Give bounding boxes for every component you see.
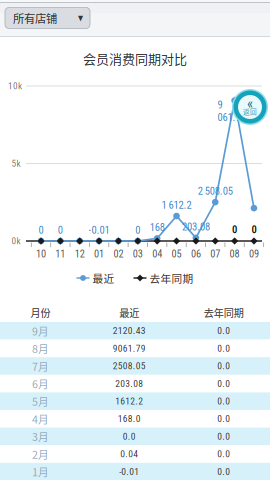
staticText: 1612.2 — [115, 396, 143, 407]
staticText: 4月 — [32, 411, 49, 426]
button[interactable]: 返回 — [232, 89, 268, 125]
staticText: 去年同期 — [149, 270, 193, 286]
staticText: 10k — [8, 80, 22, 91]
staticText: 10 — [36, 248, 46, 260]
staticText: 203.08 — [115, 378, 143, 389]
staticText: 07 — [210, 248, 220, 260]
staticText: 最近 — [92, 270, 114, 286]
staticText: 所有店铺 — [13, 10, 57, 26]
staticText: 0.0 — [217, 378, 230, 389]
staticText: -0.01 — [89, 224, 110, 236]
staticText: 2月 — [32, 446, 49, 462]
staticText: 11 — [55, 248, 65, 260]
staticText: 返回 — [243, 107, 257, 116]
staticText: 0.0 — [217, 343, 230, 354]
staticText: 09 — [249, 248, 259, 260]
staticText: 9061.79 — [113, 343, 146, 354]
button[interactable]: 所有店铺 — [5, 7, 90, 28]
staticText: 5k — [11, 158, 20, 169]
staticText: 03 — [133, 248, 143, 260]
staticText: 168.0 — [118, 413, 141, 424]
staticText: 9 061.79 — [218, 98, 246, 123]
staticText: 0.0 — [217, 360, 230, 372]
staticText: 3月 — [32, 429, 49, 444]
staticText: 0.0 — [217, 396, 230, 407]
staticText: 会员消费同期对比 — [83, 49, 187, 68]
staticText: 0 — [232, 223, 237, 236]
staticText: 月份 — [30, 305, 50, 320]
staticText: 168 — [150, 221, 165, 234]
staticText: 0.0 — [217, 413, 230, 424]
staticText: 1 612.2 — [161, 199, 191, 211]
staticText: 0.0 — [217, 431, 230, 442]
staticText: 6月 — [32, 376, 49, 391]
staticText: 203.08 — [182, 221, 210, 233]
staticText: 04 — [152, 248, 162, 260]
staticText: 0 — [135, 224, 140, 236]
staticText: 0 — [58, 224, 63, 236]
staticText: 1月 — [32, 464, 49, 479]
staticText: 8月 — [32, 341, 49, 356]
staticText: 06 — [191, 248, 201, 260]
staticText: 12 — [75, 248, 85, 260]
staticText: 02 — [113, 248, 123, 260]
staticText: 0.0 — [217, 325, 230, 336]
staticText: 5月 — [32, 393, 49, 409]
staticText: 0 — [38, 224, 43, 236]
staticText: 9月 — [32, 323, 49, 338]
staticText: 0.0 — [217, 448, 230, 460]
staticText: 01 — [94, 248, 104, 260]
staticText: 0.04 — [120, 448, 138, 460]
staticText: « — [247, 95, 253, 112]
staticText: 05 — [171, 248, 181, 260]
staticText: 7月 — [32, 358, 49, 374]
staticText: -0.01 — [119, 466, 139, 477]
staticText: 0.0 — [123, 431, 136, 442]
staticText: 0 — [251, 223, 256, 236]
staticText: 2120.43 — [113, 325, 146, 336]
staticText: 2508.05 — [113, 360, 146, 372]
staticText: 0k — [11, 235, 20, 246]
staticText: 最近 — [119, 305, 139, 320]
staticText: ▼ — [78, 14, 83, 22]
staticText: 去年同期 — [204, 305, 244, 320]
staticText: 2 508.05 — [198, 185, 233, 197]
staticText: 08 — [230, 248, 240, 260]
staticText: 0.0 — [217, 466, 230, 477]
